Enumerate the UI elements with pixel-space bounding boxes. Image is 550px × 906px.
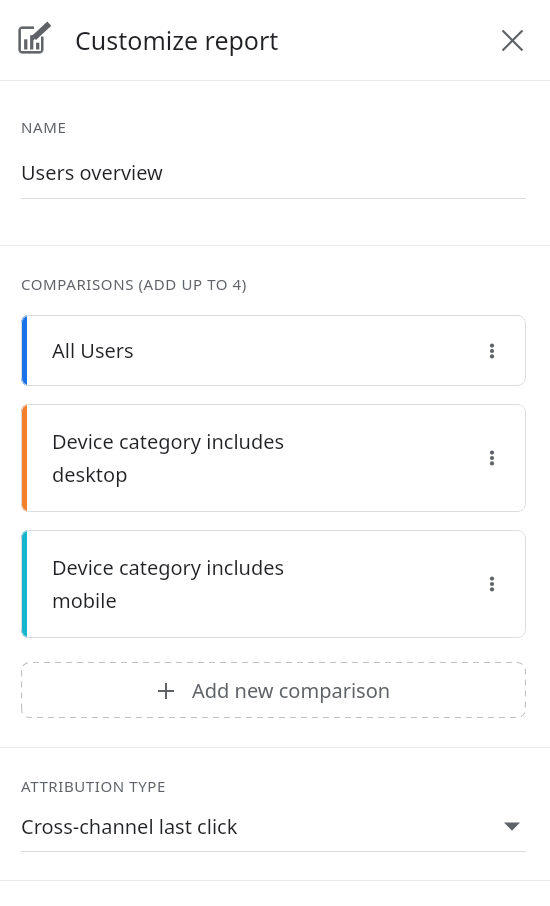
staticText: Users overview: [21, 159, 163, 186]
button[interactable]: Users overview: [21, 159, 526, 199]
staticText: Device category includes desktop: [52, 428, 468, 488]
button[interactable]: All Users: [21, 315, 526, 386]
other: Expand: [498, 812, 526, 840]
staticText: All Users: [52, 337, 468, 364]
staticText: Device category includes mobile: [52, 554, 468, 614]
staticText: Add new comparison: [192, 677, 391, 704]
staticText: Customize report: [75, 23, 488, 57]
staticText: NAME: [21, 117, 67, 137]
button[interactable]: More options: [468, 434, 516, 482]
button[interactable]: Device category includes mobile: [21, 530, 526, 638]
button[interactable]: Close: [488, 16, 536, 64]
button[interactable]: Cross-channel last click: [21, 812, 526, 852]
staticText: COMPARISONS (ADD UP TO 4): [21, 274, 247, 294]
button[interactable]: More options: [468, 560, 516, 608]
staticText: Cross-channel last click: [21, 813, 498, 840]
button[interactable]: Add new comparison: [21, 662, 526, 718]
button[interactable]: Device category includes desktop: [21, 404, 526, 512]
button[interactable]: More options: [468, 327, 516, 375]
staticText: ATTRIBUTION TYPE: [21, 776, 166, 796]
